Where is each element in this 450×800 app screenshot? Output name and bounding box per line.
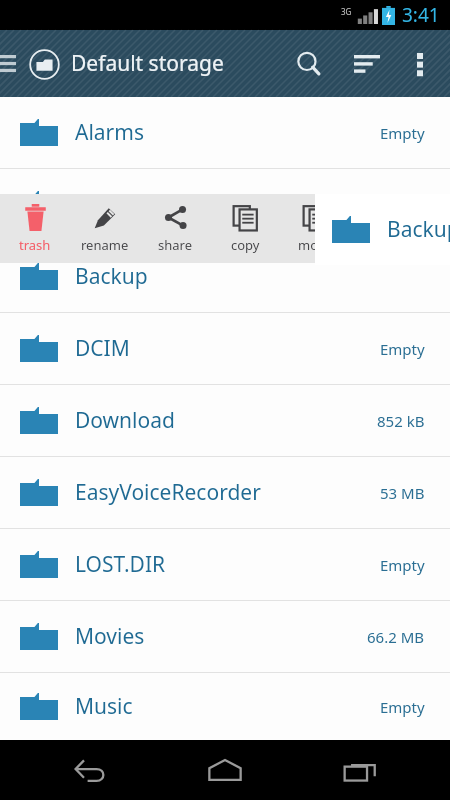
staticText: Alarms xyxy=(75,118,144,147)
button[interactable]: Android xyxy=(0,169,450,240)
button[interactable]: Back xyxy=(45,740,135,800)
staticText: Backup xyxy=(75,262,148,291)
staticText: Movies xyxy=(75,622,145,651)
button[interactable]: Backup xyxy=(315,194,450,265)
button[interactable]: Movies xyxy=(0,601,450,672)
button[interactable]: Search xyxy=(280,30,338,97)
staticText: LOST.DIR xyxy=(75,550,166,579)
staticText: Android xyxy=(75,190,154,219)
staticText: trash xyxy=(19,236,51,254)
button[interactable]: Alarms xyxy=(0,97,450,168)
staticText: Empty xyxy=(380,697,425,717)
staticText: move xyxy=(298,236,332,254)
button[interactable]: EasyVoiceRecorder xyxy=(0,457,450,528)
button[interactable]: Music xyxy=(0,673,450,740)
button[interactable]: trash xyxy=(0,194,70,263)
button[interactable]: rename xyxy=(70,194,140,263)
staticText: rename xyxy=(81,236,129,254)
staticText: Empty xyxy=(380,339,425,359)
staticText: Default storage xyxy=(71,49,224,78)
button[interactable]: Backup xyxy=(0,241,450,312)
staticText: Music xyxy=(75,692,133,721)
staticText: DCIM xyxy=(75,334,130,363)
staticText: EasyVoiceRecorder xyxy=(75,478,261,507)
staticText: 66.2 MB xyxy=(367,627,425,647)
button[interactable]: Home xyxy=(180,740,270,800)
button[interactable]: Sort xyxy=(338,30,396,97)
staticText: Backup xyxy=(387,215,450,244)
button[interactable]: Menu xyxy=(0,30,22,97)
button[interactable]: Recent apps xyxy=(315,740,405,800)
staticText: 53 MB xyxy=(380,483,425,503)
staticText: Empty xyxy=(380,123,425,143)
staticText: share xyxy=(158,236,192,254)
button[interactable]: Download xyxy=(0,385,450,456)
button[interactable]: More options xyxy=(396,30,444,97)
button[interactable]: LOST.DIR xyxy=(0,529,450,600)
button[interactable]: copy xyxy=(210,194,280,263)
staticText: 3G xyxy=(341,6,352,17)
button[interactable]: Storage xyxy=(22,42,66,86)
staticText: Download xyxy=(75,406,175,435)
staticText: copy xyxy=(231,236,260,254)
staticText: 3:41 xyxy=(402,2,440,28)
staticText: 852 kB xyxy=(377,411,425,431)
button[interactable]: DCIM xyxy=(0,313,450,384)
staticText: Empty xyxy=(380,555,425,575)
button[interactable]: move xyxy=(280,194,350,263)
button[interactable]: share xyxy=(140,194,210,263)
